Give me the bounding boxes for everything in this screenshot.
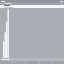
button[interactable]: Profile xyxy=(50,61,54,64)
button[interactable]: Home xyxy=(10,61,14,64)
button[interactable]: Open navigation menu xyxy=(1,3,3,5)
button[interactable]: Library xyxy=(37,61,41,64)
button[interactable]: Explore xyxy=(23,61,27,64)
button[interactable]: Activity chart xyxy=(3,9,9,58)
button[interactable] xyxy=(0,5,64,8)
